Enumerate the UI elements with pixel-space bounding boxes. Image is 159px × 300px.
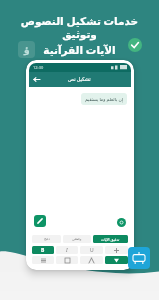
staticText: إن بالعلم وما يستقيم <box>85 96 123 102</box>
button[interactable]: Tool <box>105 246 128 254</box>
button[interactable]: Keyboard <box>128 247 150 269</box>
staticText: تدقيق الآيات <box>101 237 120 242</box>
other: Back <box>33 76 40 83</box>
staticText: وصفي <box>72 237 82 241</box>
button[interactable]: Tool <box>56 246 78 254</box>
button[interactable]: تدقيق الآيات <box>93 235 128 243</box>
staticText: B <box>41 247 45 254</box>
button[interactable]: إن بالعلم وما يستقيم <box>81 93 127 105</box>
staticText: ؤ <box>24 45 30 55</box>
staticText: تشكيل نص <box>68 76 91 83</box>
staticText: I <box>66 247 68 254</box>
button[interactable]: Tool <box>80 256 103 264</box>
staticText: دمج <box>44 237 50 241</box>
button[interactable]: Edit <box>34 215 46 227</box>
button[interactable]: وصفي <box>63 235 91 243</box>
button[interactable]: Selected tool <box>105 256 128 264</box>
button[interactable]: Back <box>29 72 131 87</box>
staticText: U <box>90 247 94 254</box>
button[interactable]: Tool <box>32 256 54 264</box>
button[interactable]: Feature <box>18 41 35 58</box>
button[interactable]: Selected tool <box>32 246 54 254</box>
staticText: خدمات تشكيل النصوص وتوثيق <box>12 14 147 40</box>
button[interactable]: Tool <box>80 246 103 254</box>
button[interactable]: Verified <box>128 38 142 52</box>
staticText: 12:30 <box>33 65 44 70</box>
button[interactable]: دمج <box>32 235 61 243</box>
staticText: الآيات القرآنية <box>43 43 116 57</box>
button[interactable]: Record <box>117 218 126 227</box>
button[interactable]: Tool <box>56 256 78 264</box>
